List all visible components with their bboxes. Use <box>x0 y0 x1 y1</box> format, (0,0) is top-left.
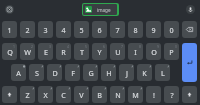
button[interactable]: Q <box>2 43 17 60</box>
staticText: ? <box>170 90 174 100</box>
button[interactable]: B <box>92 86 107 103</box>
button[interactable]: J <box>119 64 134 81</box>
button[interactable]: F <box>65 64 80 81</box>
staticText: J <box>126 68 128 78</box>
staticText: U <box>115 47 121 57</box>
staticText: W <box>24 47 31 57</box>
button[interactable]: ! <box>146 86 161 103</box>
button[interactable]: M <box>128 86 143 103</box>
staticText: T <box>80 47 84 57</box>
staticText: V <box>79 90 84 100</box>
staticText: 7 <box>121 44 123 49</box>
button[interactable]: Enter <box>182 43 197 82</box>
button[interactable]: ? <box>164 86 179 103</box>
staticText: D <box>52 68 58 78</box>
staticText: R <box>61 47 66 57</box>
staticText: 3 <box>43 25 48 35</box>
button[interactable]: W <box>20 43 35 60</box>
staticText: P <box>169 47 174 57</box>
staticText: A <box>16 68 21 78</box>
staticText: Y <box>97 47 102 57</box>
button[interactable]: Toolbar <box>5 5 14 14</box>
staticText: S <box>35 68 39 78</box>
staticText: 6 <box>103 44 105 49</box>
button[interactable]: S <box>29 64 44 81</box>
button[interactable]: Backspace <box>182 21 197 38</box>
button[interactable]: 0 <box>164 21 179 38</box>
staticText: 4 <box>67 44 69 49</box>
staticText: C <box>61 90 66 100</box>
button[interactable]: R <box>56 43 71 60</box>
button[interactable]: O <box>146 43 161 60</box>
button[interactable]: 6 <box>92 21 107 38</box>
staticText: B <box>97 90 102 100</box>
button[interactable]: A <box>11 64 26 81</box>
staticText: M <box>132 90 139 100</box>
staticText: 2 <box>31 44 33 49</box>
button[interactable]: C <box>56 86 71 103</box>
staticText: 1 <box>7 25 12 35</box>
staticText: O <box>151 47 157 57</box>
button[interactable]: D <box>47 64 62 81</box>
button[interactable]: H <box>101 64 116 81</box>
staticText: H <box>106 68 112 78</box>
button[interactable]: T <box>74 43 89 60</box>
button[interactable]: K <box>137 64 152 81</box>
staticText: F <box>71 68 75 78</box>
button[interactable]: 9 <box>146 21 161 38</box>
staticText: 3 <box>49 44 51 49</box>
button[interactable]: Shift <box>2 86 17 103</box>
staticText: 4 <box>61 25 66 35</box>
button[interactable]: V <box>74 86 89 103</box>
button[interactable]: image <box>82 3 119 16</box>
button[interactable]: L <box>155 64 170 81</box>
staticText: 8 <box>133 25 138 35</box>
staticText: E <box>44 47 48 57</box>
button[interactable]: Voice input <box>186 5 195 14</box>
staticText: 7 <box>115 25 120 35</box>
button[interactable]: G <box>83 64 98 81</box>
button[interactable]: 8 <box>128 21 143 38</box>
button[interactable]: 2 <box>20 21 35 38</box>
button[interactable]: N <box>110 86 125 103</box>
staticText: I <box>134 47 137 57</box>
staticText: ! <box>153 90 155 100</box>
button[interactable]: Z <box>20 86 35 103</box>
staticText: 1 <box>13 44 15 49</box>
staticText: 9 <box>157 44 159 49</box>
button[interactable]: 1 <box>2 21 17 38</box>
staticText: 2 <box>25 25 30 35</box>
staticText: 5 <box>85 44 87 49</box>
button[interactable]: I <box>128 43 143 60</box>
staticText: G <box>88 68 94 78</box>
button[interactable]: X <box>38 86 53 103</box>
button[interactable]: 3 <box>38 21 53 38</box>
staticText: 6 <box>97 25 102 35</box>
button[interactable]: U <box>110 43 125 60</box>
staticText: X <box>43 90 48 100</box>
button[interactable]: 5 <box>74 21 89 38</box>
staticText: image <box>97 7 111 13</box>
staticText: K <box>142 68 147 78</box>
staticText: Q <box>7 47 13 57</box>
button[interactable]: Y <box>92 43 107 60</box>
button[interactable]: Shift <box>182 86 197 103</box>
staticText: L <box>161 68 165 78</box>
button[interactable]: 4 <box>56 21 71 38</box>
staticText: 9 <box>151 25 156 35</box>
staticText: 8 <box>139 44 141 49</box>
staticText: 0 <box>175 44 177 49</box>
button[interactable]: E <box>38 43 53 60</box>
staticText: 0 <box>169 25 174 35</box>
staticText: N <box>115 90 121 100</box>
staticText: Z <box>25 90 30 100</box>
staticText: 5 <box>79 25 84 35</box>
button[interactable]: 7 <box>110 21 125 38</box>
button[interactable]: P <box>164 43 179 60</box>
